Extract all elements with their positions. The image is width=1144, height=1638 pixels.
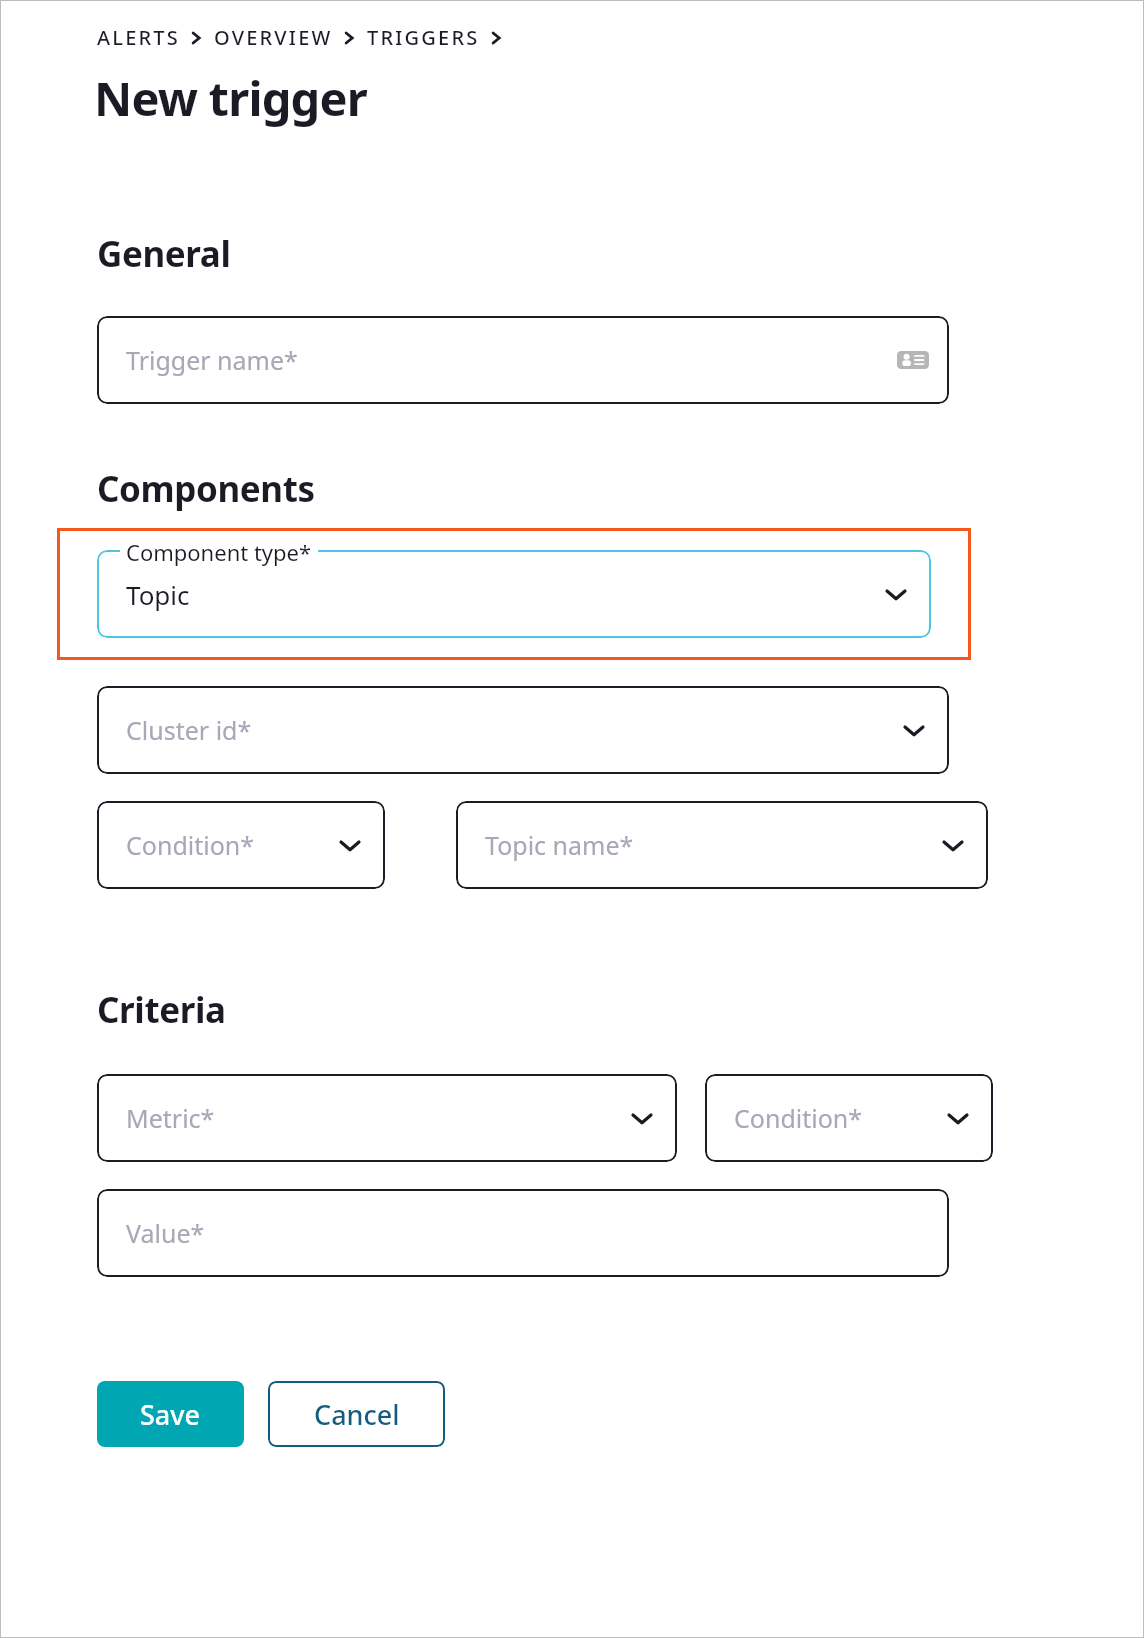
button[interactable]: Trigger name* [97,316,949,404]
staticText: New trigger [94,66,367,130]
button[interactable]: Value* [97,1189,949,1277]
button[interactable]: TRIGGERS [367,21,480,54]
staticText: Cluster id* [126,713,899,747]
staticText: Topic [126,577,881,612]
button[interactable]: Save [97,1381,244,1447]
staticText: Cancel [314,1396,400,1433]
button[interactable]: Cancel [268,1381,445,1447]
button[interactable]: Topic name* [456,801,988,889]
staticText: Topic name* [485,828,938,862]
staticText: Save [140,1396,201,1433]
staticText: Condition* [734,1101,943,1135]
staticText: Metric* [126,1101,627,1135]
button[interactable]: Condition* [97,801,385,889]
staticText: Trigger name* [126,343,897,377]
staticText: Components [97,465,315,513]
staticText: Value* [126,1216,929,1250]
button[interactable]: Metric* [97,1074,677,1162]
staticText: Component type* [126,537,312,567]
button[interactable]: Component type: Topic [97,550,931,638]
button[interactable]: OVERVIEW [214,21,333,54]
button[interactable]: Condition* [705,1074,993,1162]
staticText: Criteria [97,986,226,1034]
button[interactable]: ALERTS [97,21,180,54]
staticText: Condition* [126,828,335,862]
staticText: General [97,230,231,278]
button[interactable]: Cluster id* [97,686,949,774]
